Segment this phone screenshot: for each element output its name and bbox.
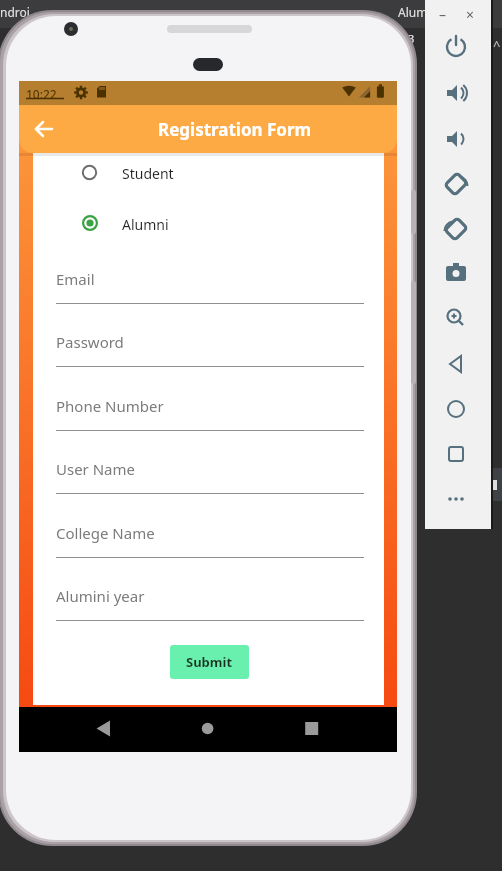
button[interactable] xyxy=(56,567,364,621)
button[interactable] xyxy=(75,158,190,188)
button[interactable] xyxy=(441,214,473,246)
button[interactable] xyxy=(33,118,55,140)
button[interactable] xyxy=(75,208,190,238)
button[interactable] xyxy=(187,714,229,744)
staticText: ndroi xyxy=(0,4,30,20)
button[interactable] xyxy=(441,441,473,473)
button[interactable] xyxy=(84,714,126,744)
button[interactable]: Submit xyxy=(170,645,249,679)
button[interactable] xyxy=(441,32,473,64)
button[interactable] xyxy=(56,377,364,431)
staticText: College Name xyxy=(56,523,155,543)
button[interactable] xyxy=(441,350,473,382)
staticText: 10:22 xyxy=(26,86,57,102)
staticText: Student xyxy=(122,164,174,183)
staticText: Alumini year xyxy=(56,586,145,606)
staticText: × xyxy=(466,5,475,24)
button[interactable] xyxy=(441,168,473,200)
button[interactable] xyxy=(441,77,473,109)
button[interactable] xyxy=(291,714,333,744)
staticText: Alumni xyxy=(122,215,169,234)
button[interactable] xyxy=(56,503,364,557)
staticText: User Name xyxy=(56,459,136,479)
staticText: Phone Number xyxy=(56,396,164,416)
button[interactable] xyxy=(461,4,481,24)
staticText: ^ xyxy=(493,36,501,54)
staticText: 3 xyxy=(408,31,415,46)
staticText: Registration Form xyxy=(158,118,312,141)
button[interactable] xyxy=(441,304,473,336)
button[interactable] xyxy=(441,259,473,291)
button[interactable] xyxy=(441,123,473,155)
button[interactable] xyxy=(441,395,473,427)
staticText: Alumi xyxy=(398,4,431,20)
button[interactable] xyxy=(441,486,473,518)
staticText: – xyxy=(439,5,446,24)
button[interactable] xyxy=(434,4,454,24)
staticText: Password xyxy=(56,332,124,352)
button[interactable] xyxy=(56,250,364,304)
staticText: Email xyxy=(56,269,95,289)
button[interactable] xyxy=(56,313,364,367)
staticText: Submit xyxy=(186,653,233,671)
button[interactable] xyxy=(56,440,364,494)
